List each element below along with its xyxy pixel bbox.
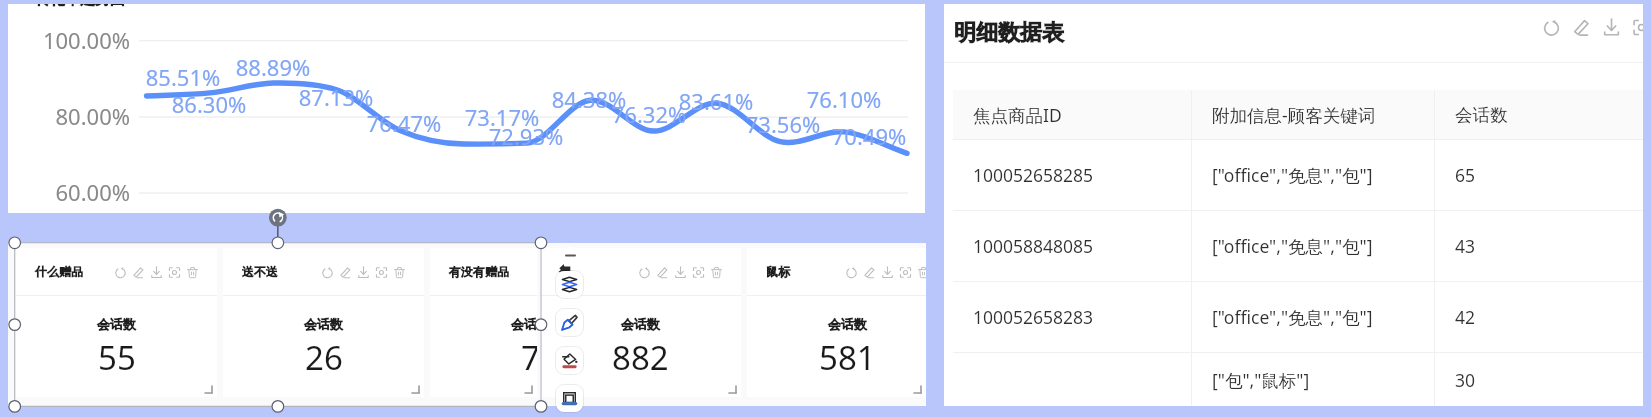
button[interactable]: Focus [372,263,390,281]
button[interactable]: Brush [554,307,585,338]
staticText: 转化率趋势图 [35,4,125,9]
staticText: 85.51% [137,62,229,92]
button[interactable]: Focus [165,263,183,281]
button[interactable]: Delete [183,263,201,281]
staticText: ["office","免息","包"] [1212,163,1373,187]
button[interactable]: 有没有赠品 [430,248,537,397]
staticText: 什么赠品 [35,264,83,279]
staticText: 65 [1455,163,1476,187]
staticText: 焦点商品ID [973,103,1062,127]
button[interactable]: Fullscreen [1629,15,1643,39]
staticText: 80.00% [37,101,130,131]
button[interactable]: Refresh [842,263,860,281]
button[interactable]: Refresh [1539,15,1563,39]
staticText: 43 [1455,234,1476,258]
button[interactable]: Edit [860,263,878,281]
button[interactable]: ["包","鼠标"] [953,352,1643,406]
button[interactable]: 鼠标 [747,248,926,397]
staticText: 会话数 [511,316,537,332]
button[interactable]: Download [147,263,165,281]
staticText: 87.13% [290,82,382,112]
staticText: ["office","免息","包"] [1212,234,1373,258]
staticText: 100.00% [37,25,130,55]
button[interactable]: Frame [554,383,585,414]
staticText: 包 [559,264,571,279]
staticText: 73.56% [737,109,829,139]
button[interactable]: Delete [914,263,926,281]
staticText: 100052658285 [973,163,1094,187]
button[interactable]: Edit [129,263,147,281]
button[interactable]: Download [878,263,896,281]
staticText: 88.89% [227,52,319,82]
button[interactable]: Download [354,263,372,281]
staticText: 30 [1455,368,1476,392]
staticText: 882 [612,335,669,380]
staticText: 83.61% [670,86,762,116]
staticText: 42 [1455,305,1476,329]
button[interactable]: 包 [540,248,741,397]
button[interactable]: Focus [896,263,914,281]
staticText: 会话数 [621,316,660,332]
button[interactable]: Delete [707,263,725,281]
staticText: 会话数 [1455,104,1508,126]
staticText: 100052658283 [973,305,1094,329]
staticText: ["office","免息","包"] [1212,305,1373,329]
button[interactable]: Collapse toolbar [562,247,578,263]
staticText: 84.38% [543,84,635,114]
button[interactable]: Refresh [635,263,653,281]
button[interactable]: 100052658285 [953,139,1643,210]
staticText: 72.93% [480,121,572,151]
button[interactable]: 100052658283 [953,281,1643,352]
staticText: 会话数 [828,316,867,332]
button[interactable]: Download [671,263,689,281]
staticText: 55 [98,335,136,380]
staticText: 76.32% [603,99,695,129]
button[interactable]: Delete [390,263,408,281]
button[interactable]: Refresh [318,263,336,281]
staticText: 73.17% [456,102,548,132]
button[interactable]: 送不送 [223,248,424,397]
staticText: 76.47% [358,108,450,138]
staticText: 明细数据表 [954,19,1064,47]
button[interactable]: Edit [1569,15,1593,39]
staticText: 会话数 [304,316,343,332]
staticText: 86.30% [163,89,255,119]
button[interactable]: 什么赠品 [16,248,217,397]
staticText: 76.10% [798,84,890,114]
staticText: 鼠标 [766,264,790,279]
staticText: 60.00% [37,177,130,207]
staticText: 附加信息-顾客关键词 [1212,103,1376,127]
staticText: 送不送 [242,264,278,279]
button[interactable]: Layers [554,269,585,300]
button[interactable]: Refresh [111,263,129,281]
button[interactable]: Fill colour [554,345,585,376]
staticText: 7 [521,335,537,380]
button[interactable]: Edit [653,263,671,281]
staticText: 581 [819,335,876,380]
staticText: 会话数 [97,316,136,332]
staticText: ["包","鼠标"] [1212,368,1310,392]
button[interactable]: Focus [689,263,707,281]
button[interactable]: Download [1599,15,1623,39]
button[interactable]: Edit [336,263,354,281]
staticText: 100058848085 [973,234,1094,258]
staticText: 70.49% [823,121,915,151]
staticText: 26 [305,335,343,380]
button[interactable]: 100058848085 [953,210,1643,281]
staticText: 有没有赠品 [449,264,509,279]
